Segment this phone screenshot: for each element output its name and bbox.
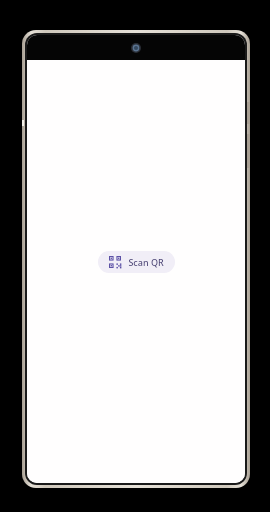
other: QR code (109, 256, 121, 268)
button[interactable]: QR code (98, 251, 175, 273)
staticText: Scan QR (128, 256, 164, 268)
